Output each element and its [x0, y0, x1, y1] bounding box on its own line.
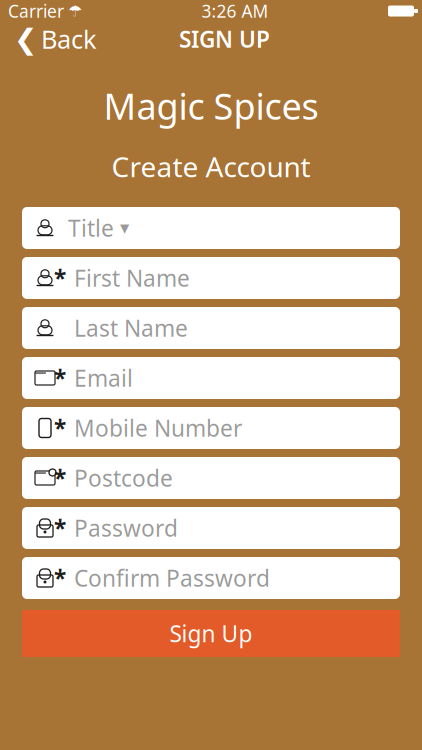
button[interactable]: Last Name	[22, 307, 400, 349]
button[interactable]: ❮	[6, 21, 105, 57]
staticText: *	[54, 263, 66, 293]
staticText: ☂	[68, 2, 82, 20]
staticText: Confirm Password	[74, 563, 270, 593]
button[interactable]: Sign Up	[22, 610, 400, 657]
button[interactable]: *	[22, 507, 400, 549]
staticText: Carrier	[8, 0, 64, 22]
staticText: Postcode	[74, 463, 173, 493]
staticText: Title	[68, 213, 114, 243]
staticText: Last Name	[74, 313, 188, 343]
button[interactable]: *	[22, 457, 400, 499]
button[interactable]: *	[22, 357, 400, 399]
button[interactable]: *	[22, 257, 400, 299]
staticText: First Name	[74, 263, 190, 293]
staticText: Sign Up	[169, 618, 252, 648]
staticText: Password	[74, 513, 178, 543]
staticText: Create Account	[111, 148, 310, 185]
button[interactable]: *	[22, 407, 400, 449]
staticText: Back	[41, 22, 97, 56]
staticText: ▼	[120, 221, 129, 235]
staticText: Mobile Number	[74, 413, 242, 443]
staticText: *	[54, 363, 66, 393]
staticText: *	[54, 513, 66, 543]
staticText: Magic Spices	[103, 82, 318, 130]
button[interactable]: Title	[22, 207, 400, 249]
staticText: *	[54, 463, 66, 493]
staticText: ❮	[14, 23, 37, 55]
staticText: 3:26 AM	[201, 0, 268, 22]
button[interactable]: *	[22, 557, 400, 599]
staticText: *	[54, 413, 66, 443]
staticText: SIGN UP	[179, 24, 270, 54]
staticText: *	[54, 563, 66, 593]
staticText: Email	[74, 363, 133, 393]
